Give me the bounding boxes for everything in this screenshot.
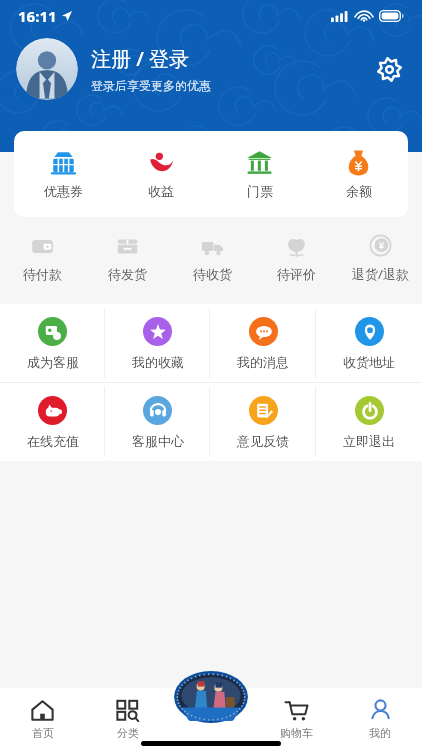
button[interactable]: 分类 — [85, 688, 170, 750]
button[interactable]: 待发货 — [85, 222, 170, 294]
staticText: 待收货 — [193, 266, 232, 282]
staticText: 注册 / 登录 — [91, 45, 190, 72]
button[interactable]: Settings — [370, 50, 408, 88]
staticText: 首页 — [32, 726, 54, 740]
button[interactable]: Profile avatar — [16, 38, 78, 100]
button[interactable]: 成为客服 — [0, 304, 105, 382]
staticText: 立即退出 — [343, 433, 395, 449]
button[interactable]: 客服中心 — [105, 383, 210, 461]
staticText: 待发货 — [108, 266, 147, 282]
button[interactable]: 待付款 — [0, 222, 85, 294]
button[interactable]: 待评价 — [254, 222, 338, 294]
button[interactable]: 优惠券 — [14, 131, 112, 217]
staticText: 16:11 — [18, 6, 57, 26]
staticText: 我的 — [369, 726, 391, 740]
staticText: 待评价 — [277, 266, 316, 282]
staticText: 登录后享受更多的优惠 — [91, 78, 211, 93]
button[interactable]: 退货/退款 — [338, 222, 422, 294]
button[interactable]: 在线客服 — [174, 671, 248, 723]
button[interactable]: 待收货 — [170, 222, 254, 294]
staticText: 优惠券 — [44, 183, 83, 199]
button[interactable]: 门票 — [210, 131, 309, 217]
staticText: 我的收藏 — [132, 354, 184, 370]
button[interactable]: 收货地址 — [316, 304, 422, 382]
button[interactable]: 收益 — [112, 131, 210, 217]
staticText: 意见反馈 — [237, 433, 289, 449]
staticText: 客服中心 — [132, 433, 184, 449]
button[interactable]: 我的 — [338, 688, 422, 750]
button[interactable]: 余额 — [309, 131, 408, 217]
staticText: 门票 — [247, 183, 273, 199]
button[interactable]: 立即退出 — [316, 383, 422, 461]
staticText: 在线充值 — [27, 433, 79, 449]
button[interactable]: 我的消息 — [210, 304, 316, 382]
staticText: 成为客服 — [27, 354, 79, 370]
staticText: 待付款 — [23, 266, 62, 282]
button[interactable]: 在线充值 — [0, 383, 105, 461]
button[interactable]: 意见反馈 — [210, 383, 316, 461]
staticText: 购物车 — [280, 726, 313, 740]
staticText: 收货地址 — [343, 354, 395, 370]
staticText: 分类 — [117, 726, 139, 740]
staticText: 余额 — [346, 183, 372, 199]
button[interactable]: 首页 — [0, 688, 85, 750]
staticText: 我的消息 — [237, 354, 289, 370]
staticText: 退货/退款 — [352, 265, 409, 283]
button[interactable]: 我的收藏 — [105, 304, 210, 382]
button[interactable]: 购物车 — [254, 688, 338, 750]
button[interactable]: 注册 / 登录 — [91, 45, 370, 93]
staticText: 收益 — [148, 183, 174, 199]
